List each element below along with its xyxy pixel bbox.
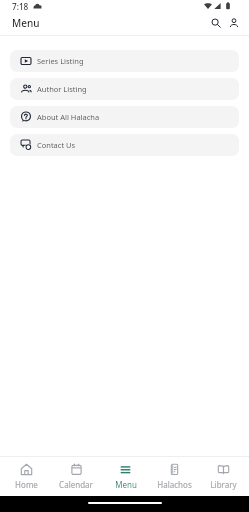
staticText: About All Halacha: [37, 112, 100, 122]
staticText: 7:18: [12, 1, 29, 12]
button[interactable]: Author Listing: [10, 78, 239, 100]
button[interactable]: Contact Us: [10, 134, 239, 156]
staticText: Home: [15, 479, 38, 490]
staticText: Library: [210, 479, 237, 490]
button[interactable]: Series Listing: [10, 50, 239, 72]
staticText: Series Listing: [37, 56, 84, 66]
button[interactable]: Library: [199, 463, 248, 490]
staticText: Author Listing: [37, 84, 87, 94]
staticText: Menu: [115, 479, 137, 490]
button[interactable]: About All Halacha: [10, 106, 239, 128]
button[interactable]: Account: [225, 14, 242, 31]
button[interactable]: Search: [207, 14, 224, 31]
staticText: Menu: [12, 16, 40, 30]
button[interactable]: Home: [1, 463, 51, 490]
staticText: Contact Us: [37, 140, 76, 150]
button[interactable]: Menu: [101, 463, 150, 490]
staticText: Halachos: [157, 479, 192, 490]
button[interactable]: Calendar: [51, 463, 101, 490]
button[interactable]: Halachos: [150, 463, 199, 490]
staticText: Calendar: [59, 479, 93, 490]
